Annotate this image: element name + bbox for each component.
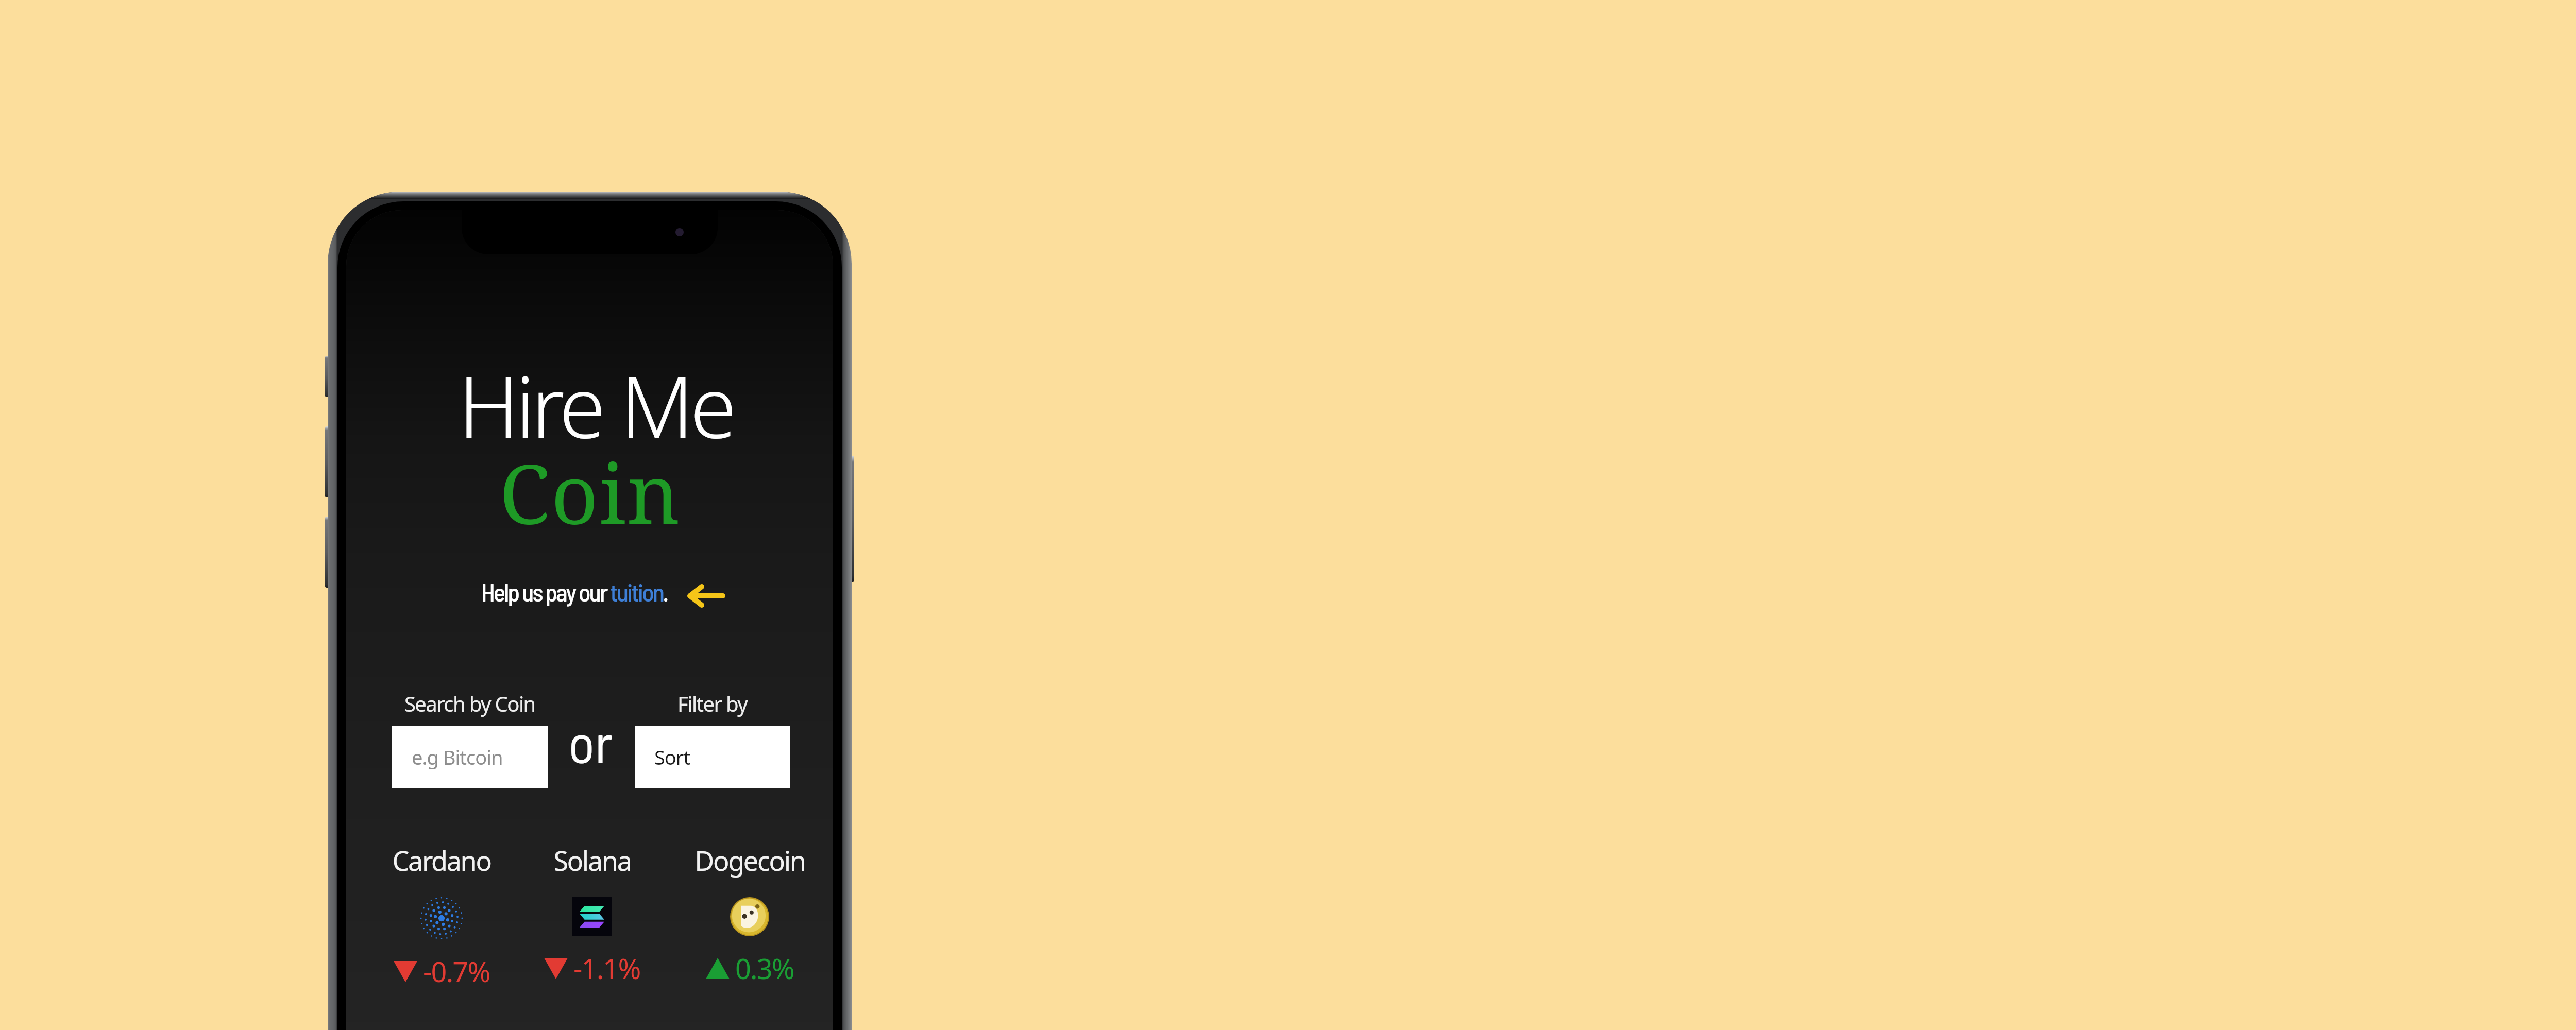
staticText: -0.7%	[423, 952, 490, 990]
button[interactable]: Volume down	[325, 517, 330, 588]
button[interactable]: Silent switch	[325, 356, 330, 397]
button[interactable]: Dogecoin	[685, 842, 814, 987]
button[interactable]: Open tuition link	[687, 584, 725, 608]
staticText: Search by Coin	[404, 690, 535, 717]
staticText: 0.3%	[735, 949, 794, 987]
button[interactable]: Sort	[635, 726, 790, 788]
staticText: Filter by	[677, 690, 748, 717]
staticText: Solana	[553, 842, 631, 879]
staticText: e.g Bitcoin	[412, 744, 503, 770]
button[interactable]: Power	[850, 456, 854, 582]
button[interactable]: e.g Bitcoin	[392, 726, 548, 788]
staticText: -1.1%	[573, 949, 640, 987]
button[interactable]: Volume up	[325, 426, 330, 497]
staticText: Sort	[654, 744, 690, 770]
staticText: Dogecoin	[694, 842, 805, 879]
staticText: Cardano	[392, 842, 491, 879]
staticText: Coin	[499, 436, 681, 548]
button[interactable]: Help us pay our tuition.	[481, 577, 668, 607]
button[interactable]: Cardano	[377, 842, 506, 990]
button[interactable]: Solana	[528, 842, 656, 987]
staticText: Help us pay our tuition.	[481, 577, 668, 607]
staticText: or	[568, 708, 613, 770]
staticText: Hire Me	[458, 348, 733, 462]
